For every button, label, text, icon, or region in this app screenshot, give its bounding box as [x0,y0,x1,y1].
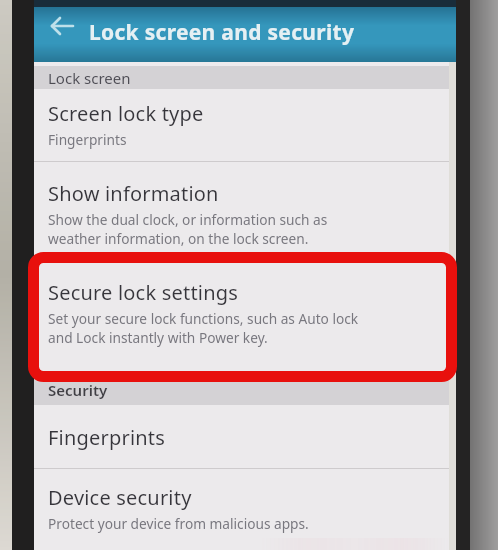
staticText: Fingerprints [48,130,127,149]
staticText: and Lock instantly with Power key. [48,328,268,347]
staticText: Lock screen [48,68,131,88]
button[interactable]: Screen lock type [48,100,452,146]
button[interactable]: Fingerprints [48,424,452,451]
staticText: Fingerprints [48,424,166,451]
button[interactable]: Lock screen and security [34,7,456,62]
staticText: Secure lock settings [48,279,238,306]
staticText: Device security [48,484,192,511]
staticText: Screen lock type [48,100,204,127]
staticText: Set your secure lock functions, such as … [48,309,359,328]
staticText: Show the dual clock, or information such… [48,210,328,229]
button[interactable]: Device security [48,484,452,530]
button[interactable]: Show information [48,180,452,245]
staticText: weather information, on the lock screen. [48,229,309,248]
staticText: Show information [48,180,219,207]
staticText: Lock screen and security [89,18,355,47]
button[interactable]: Secure lock settings [48,279,452,344]
staticText: Protect your device from malicious apps. [48,514,309,533]
staticText: Security [48,380,108,400]
button[interactable] [51,14,75,38]
